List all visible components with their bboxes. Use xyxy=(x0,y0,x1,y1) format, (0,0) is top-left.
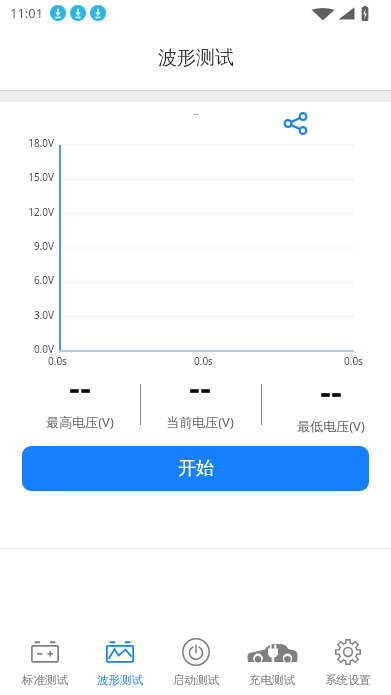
staticText: 系统设置 xyxy=(325,673,371,687)
staticText: 9.0V xyxy=(0,239,54,253)
staticText: 3.0V xyxy=(0,308,54,322)
staticText: 充电测试 xyxy=(249,673,295,687)
staticText: 0.0s xyxy=(194,354,213,368)
staticText: 0.0s xyxy=(48,354,67,368)
button[interactable]: Share xyxy=(279,107,311,139)
button[interactable]: 最高电压(V) xyxy=(20,372,140,398)
button[interactable]: 充电测试 xyxy=(234,638,310,695)
staticText: 启动测试 xyxy=(173,673,219,687)
staticText: 当前电压(V) xyxy=(140,413,260,431)
staticText: 0.0s xyxy=(344,354,363,368)
staticText: 0.0V xyxy=(0,342,54,356)
button[interactable]: 系统设置 xyxy=(310,638,386,695)
button[interactable]: 最低电压(V) xyxy=(271,376,391,402)
button[interactable]: 启动测试 xyxy=(158,638,234,695)
staticText: 波形测试 xyxy=(158,46,234,70)
button[interactable]: 波形测试 xyxy=(82,638,158,695)
button[interactable]: 开始 xyxy=(22,446,369,491)
staticText: -- xyxy=(193,107,199,119)
staticText: 18.0V xyxy=(0,136,54,150)
staticText: 波形测试 xyxy=(97,673,143,687)
staticText: 6.0V xyxy=(0,273,54,287)
staticText: 标准测试 xyxy=(22,673,68,687)
staticText: 11:01 xyxy=(10,4,44,22)
button[interactable]: 当前电压(V) xyxy=(140,372,260,398)
staticText: 12.0V xyxy=(0,205,54,219)
button[interactable]: 标准测试 xyxy=(7,638,82,695)
staticText: 开始 xyxy=(178,457,214,480)
staticText: 最高电压(V) xyxy=(20,413,140,431)
staticText: 15.0V xyxy=(0,170,54,184)
staticText: 最低电压(V) xyxy=(271,417,391,435)
